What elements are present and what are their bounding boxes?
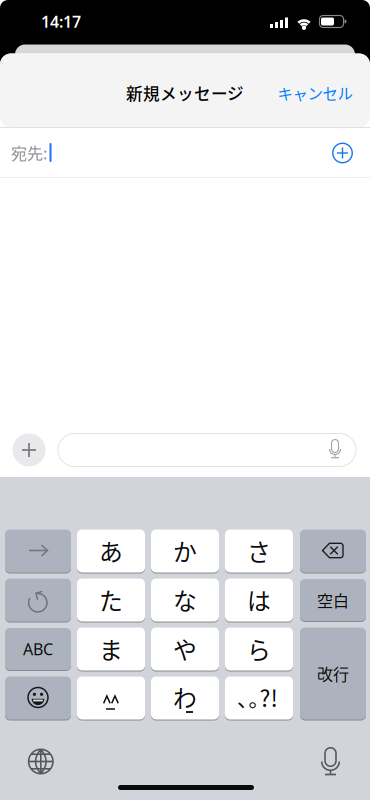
staticText: 。	[248, 682, 269, 712]
staticText: た	[99, 582, 123, 617]
button[interactable]: 、	[225, 676, 293, 719]
staticText: !	[270, 680, 277, 714]
staticText: 空白	[317, 588, 349, 612]
staticText: 改行	[317, 662, 349, 685]
button[interactable]: Message field	[58, 433, 356, 466]
button[interactable]: わ	[151, 676, 219, 719]
button[interactable]: な	[151, 578, 219, 621]
button[interactable]: ま	[77, 627, 145, 670]
button[interactable]: ら	[225, 627, 293, 670]
staticText: さ	[247, 533, 271, 568]
button[interactable]: Small kana / dakuten	[77, 676, 145, 719]
staticText: わ	[173, 680, 197, 714]
button[interactable]: ABC	[5, 628, 71, 670]
button[interactable]: さ	[225, 529, 293, 572]
button[interactable]: Attach	[12, 433, 45, 466]
staticText: は	[247, 582, 271, 617]
staticText: キャンセル	[277, 82, 352, 104]
staticText: あ	[99, 533, 123, 568]
staticText: 宛先:	[11, 141, 47, 164]
button[interactable]: Dictate	[315, 746, 345, 776]
staticText: 14:17	[41, 11, 81, 32]
button[interactable]: Emoji	[5, 676, 71, 719]
button[interactable]: キャンセル	[277, 82, 352, 104]
staticText: ABC	[23, 638, 53, 660]
button[interactable]: Delete	[300, 529, 366, 572]
button[interactable]: は	[225, 578, 293, 621]
staticText: や	[173, 631, 197, 666]
staticText: ?	[259, 680, 270, 714]
staticText: ら	[247, 631, 271, 666]
staticText: 、	[237, 682, 258, 712]
button[interactable]: か	[151, 529, 219, 572]
button[interactable]: Undo	[5, 578, 71, 621]
staticText: な	[173, 582, 197, 617]
button[interactable]: 改行	[300, 627, 366, 719]
button[interactable]: Add Contact	[333, 143, 352, 163]
button[interactable]: Cursor Right	[5, 529, 71, 572]
staticText: 新規メッセージ	[126, 81, 244, 105]
button[interactable]: Next Keyboard	[26, 746, 56, 776]
button[interactable]: あ	[77, 529, 145, 572]
button[interactable]: 空白	[300, 579, 366, 621]
button[interactable]: や	[151, 627, 219, 670]
staticText: ま	[99, 631, 123, 666]
button[interactable]: た	[77, 578, 145, 621]
staticText: か	[173, 533, 197, 568]
